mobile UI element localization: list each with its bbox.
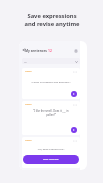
staticText: Save expressions — [27, 12, 77, 20]
button[interactable]: Settings — [73, 48, 79, 54]
button[interactable]: Play audio — [71, 91, 77, 97]
button[interactable]: Today — [22, 137, 80, 168]
button[interactable]: Today — [22, 101, 80, 135]
staticText: Today — [25, 138, 32, 141]
staticText: All — [24, 60, 27, 63]
staticText: Study sentences — [43, 158, 59, 161]
button[interactable]: All — [22, 58, 80, 64]
staticText: Today — [25, 69, 32, 72]
staticText: My sentences — [25, 48, 47, 52]
button[interactable]: Play audio — [71, 127, 77, 133]
button[interactable]: Back — [21, 47, 27, 53]
staticText: “That's so fragrant and aromatic.” — [22, 80, 80, 83]
button[interactable]: Today — [22, 68, 80, 99]
staticText: “I like the smell. Does it ___ in pollen… — [22, 109, 80, 117]
staticText: Today — [25, 102, 32, 105]
button[interactable]: Study sentences — [23, 155, 79, 164]
staticText: 12 — [48, 48, 52, 52]
staticText: and revise anytime — [24, 20, 80, 28]
staticText: “Ed, what's eating you?” — [22, 147, 80, 150]
